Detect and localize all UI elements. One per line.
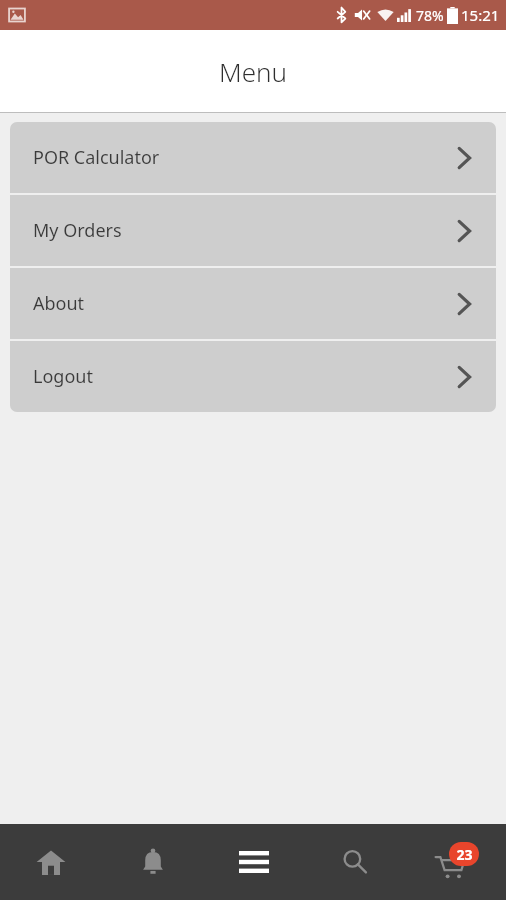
staticText: 78% [416, 6, 444, 25]
staticText: My Orders [33, 218, 122, 243]
button[interactable]: Menu [203, 824, 304, 900]
button[interactable]: My Orders [10, 195, 496, 266]
button[interactable]: POR Calculator [10, 122, 496, 193]
button[interactable]: Logout [10, 341, 496, 412]
staticText: POR Calculator [33, 145, 160, 170]
staticText: 23 [456, 845, 473, 864]
button[interactable]: About [10, 268, 496, 339]
button[interactable]: Search [304, 824, 405, 900]
button[interactable]: Cart, 23 items [405, 824, 506, 900]
button[interactable]: Home [0, 824, 102, 900]
staticText: 15:21 [461, 5, 500, 25]
staticText: Menu [219, 54, 287, 89]
staticText: Logout [33, 364, 93, 389]
staticText: About [33, 291, 85, 316]
button[interactable]: Notifications [102, 824, 203, 900]
